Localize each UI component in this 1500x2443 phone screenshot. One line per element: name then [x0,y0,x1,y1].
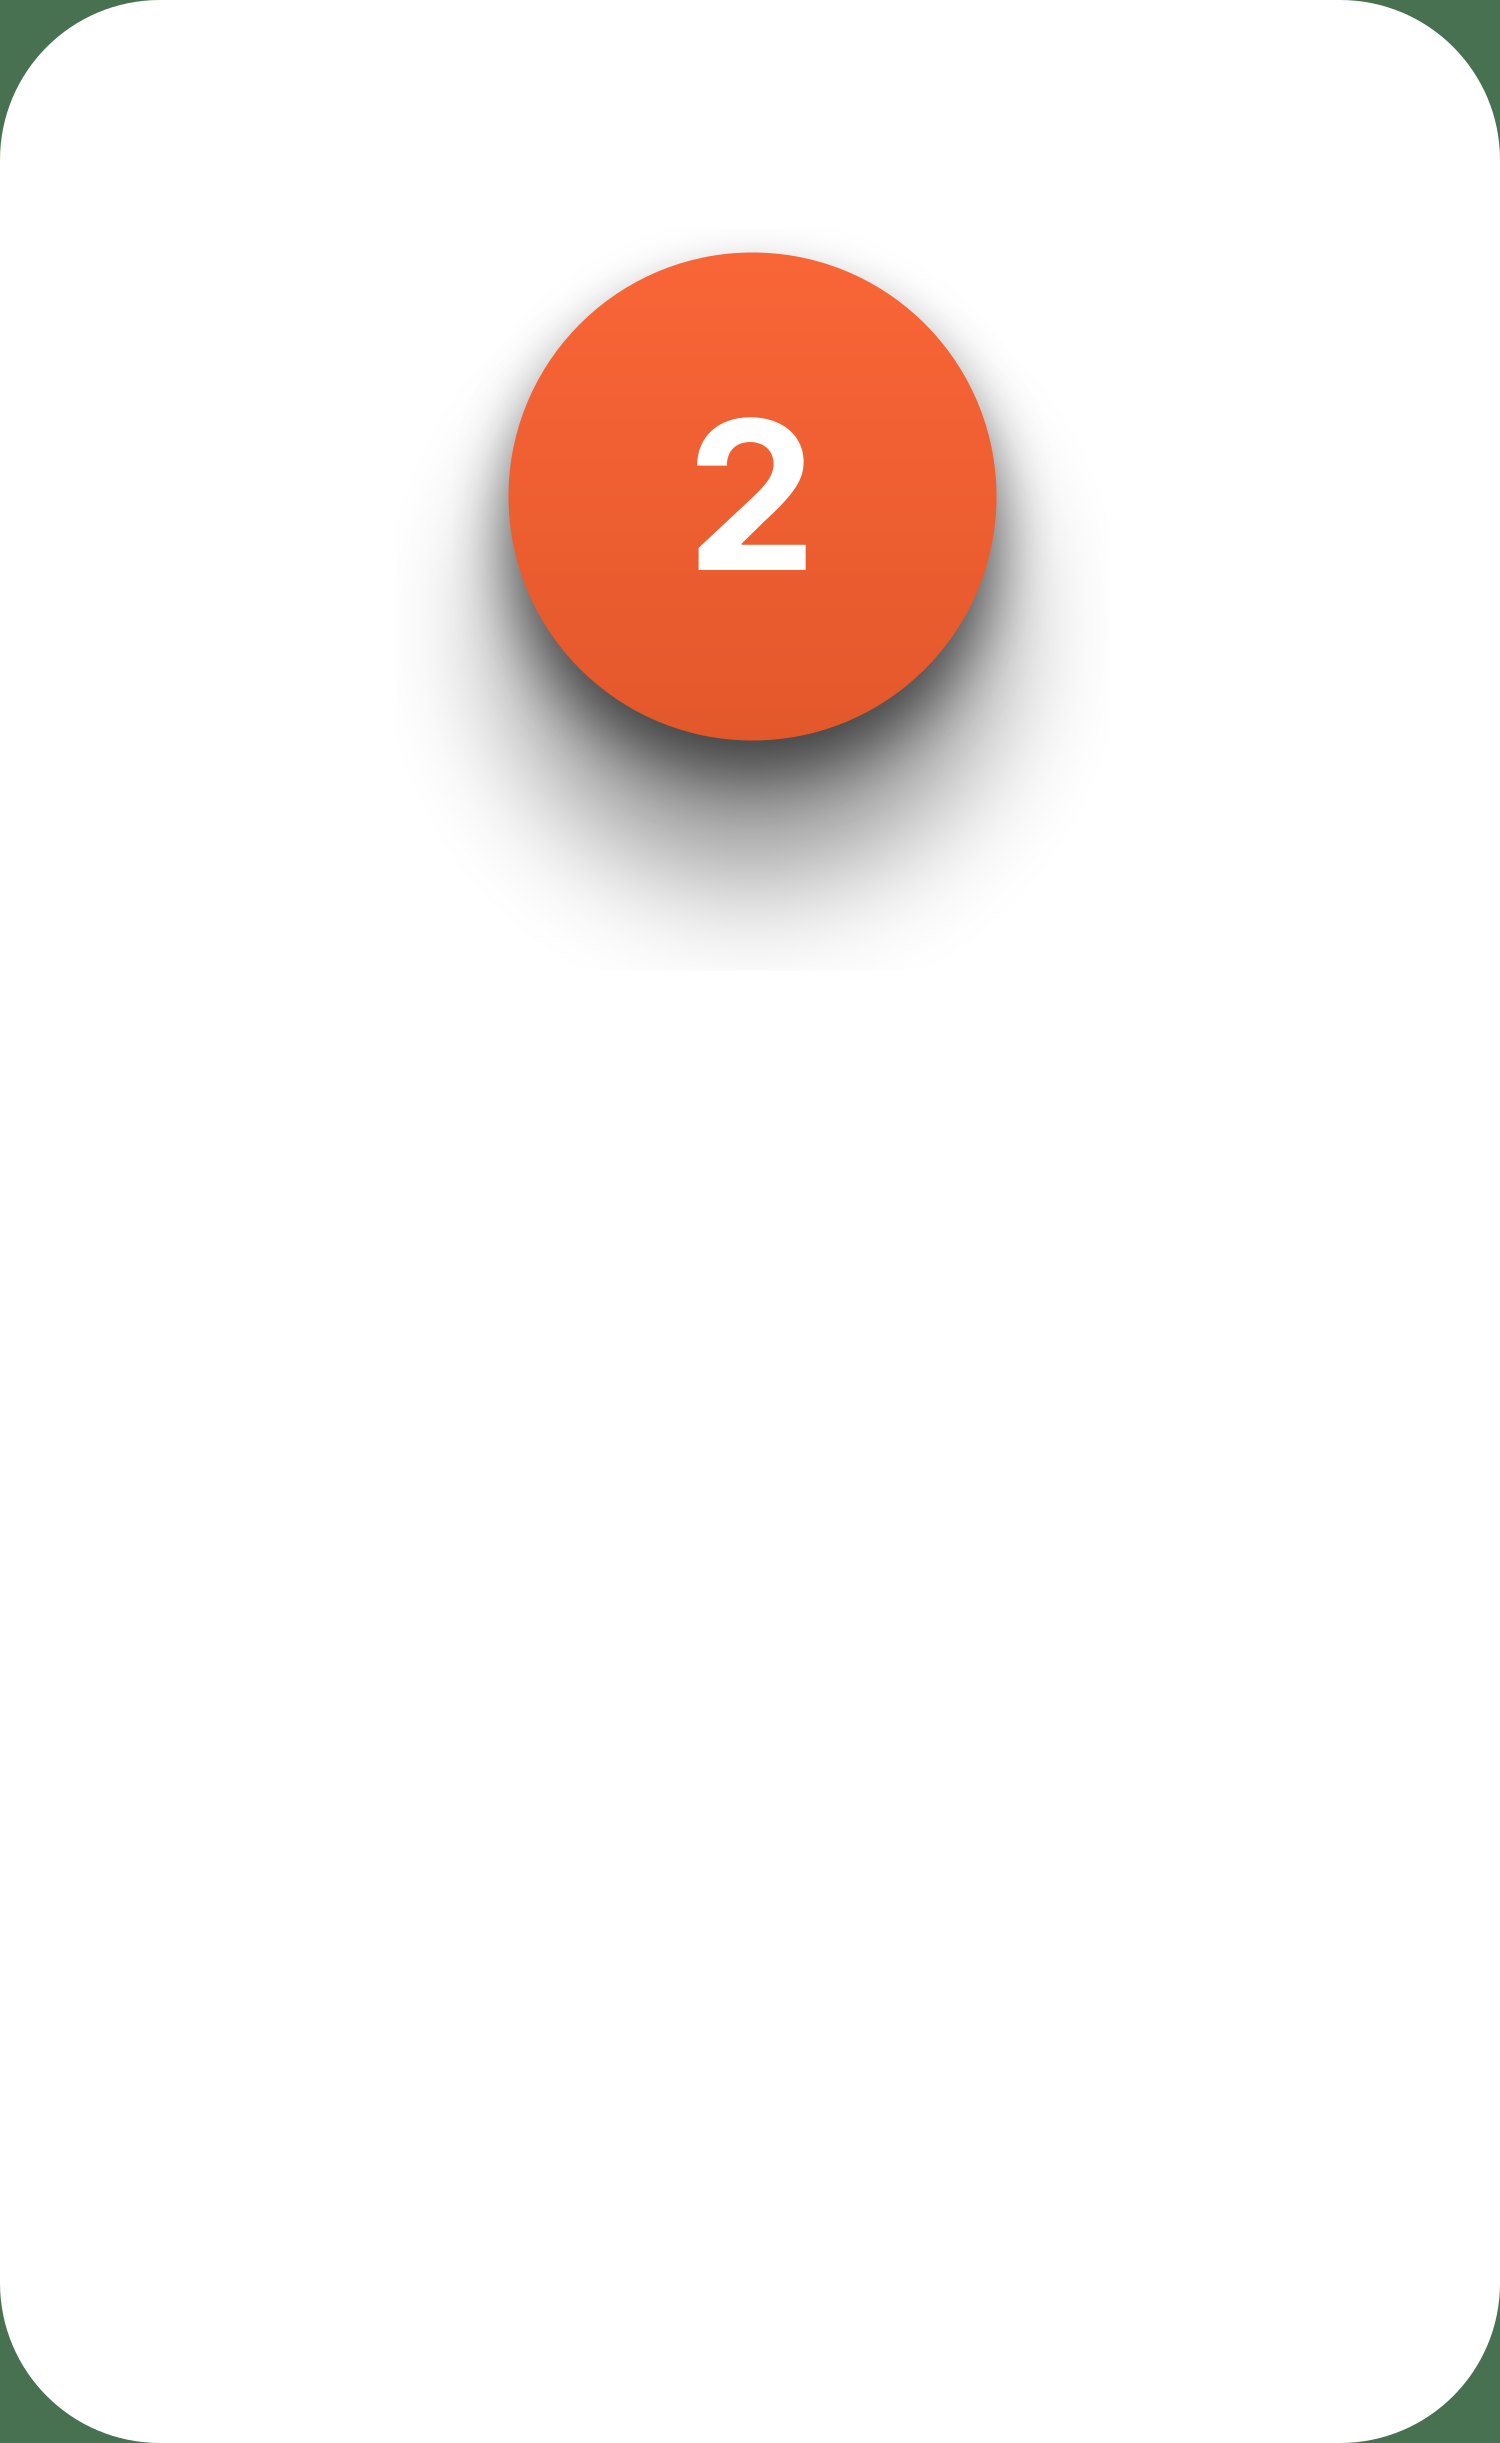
staticText: 2 [686,369,817,620]
button[interactable]: 2 items [508,252,996,740]
